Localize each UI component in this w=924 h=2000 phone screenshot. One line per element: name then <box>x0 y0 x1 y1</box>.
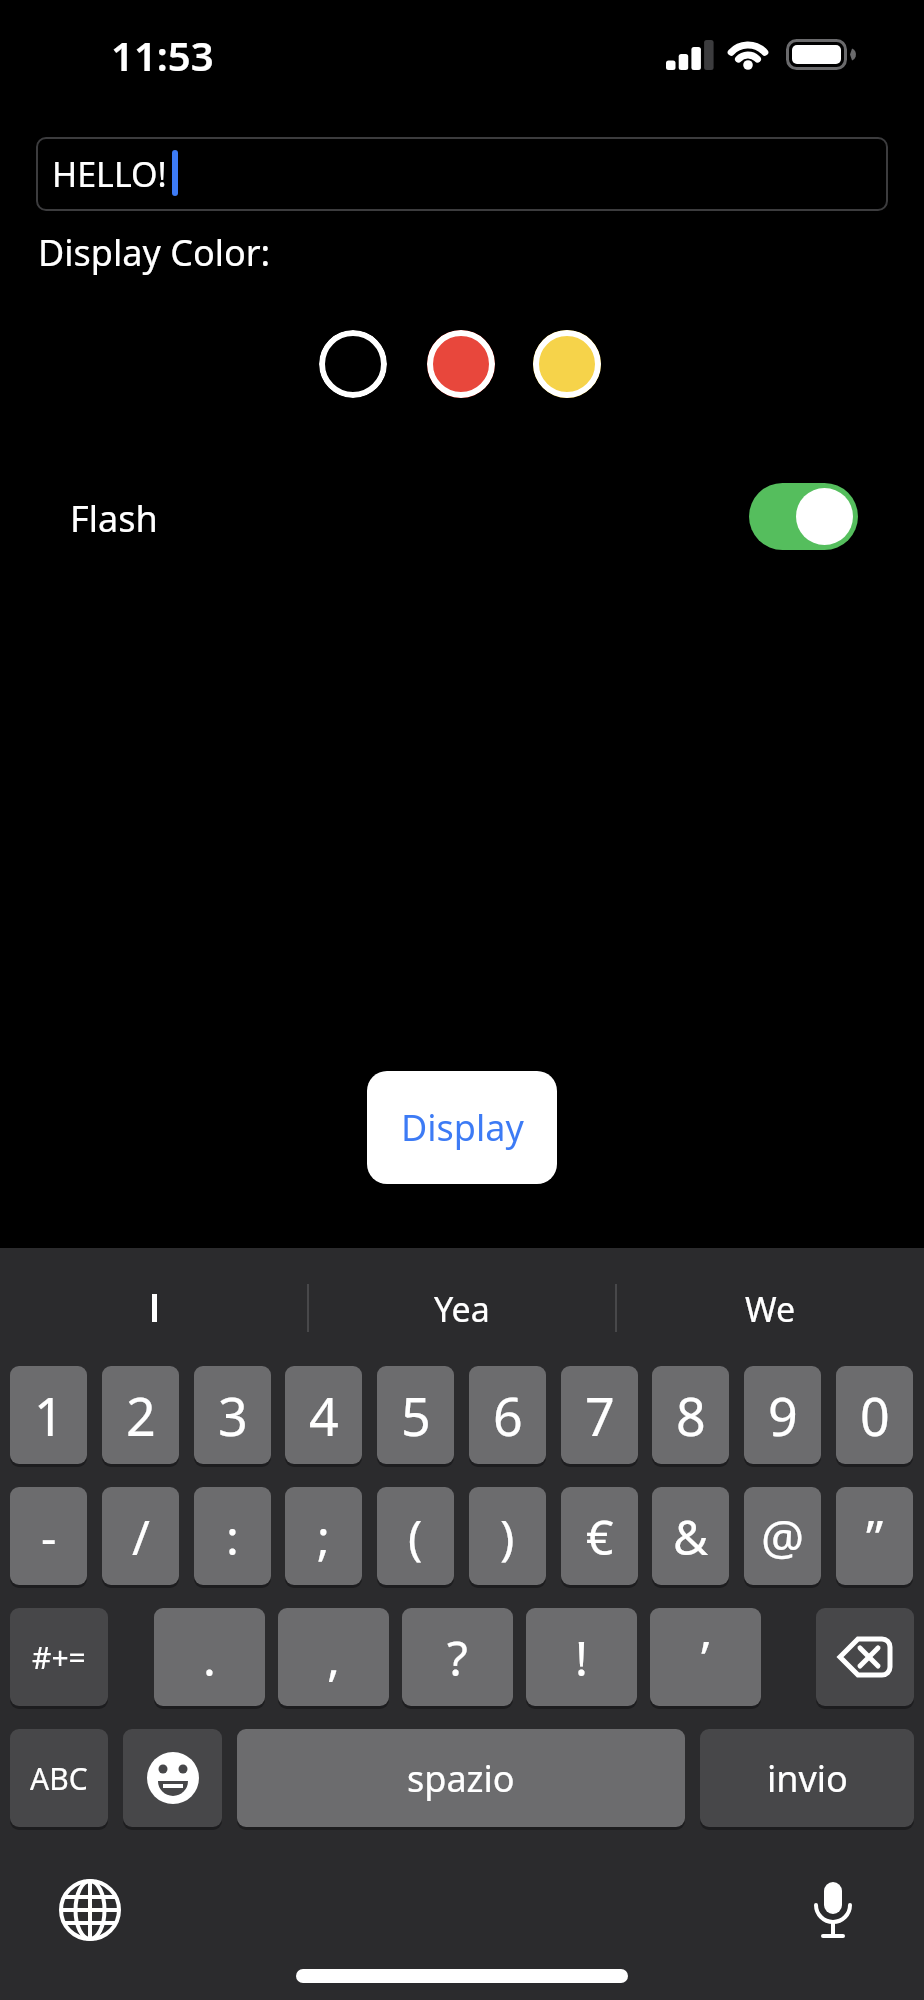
staticText: 2 <box>126 1380 156 1451</box>
button[interactable]: ( <box>377 1487 454 1585</box>
button[interactable]: / <box>102 1487 179 1585</box>
staticText: Yea <box>434 1286 490 1332</box>
staticText: ? <box>447 1625 468 1690</box>
staticText: @ <box>761 1504 805 1569</box>
staticText: 9 <box>768 1380 798 1451</box>
staticText: ) <box>500 1504 515 1569</box>
button[interactable]: HELLO! <box>36 137 888 211</box>
button[interactable]: 4 <box>285 1366 362 1464</box>
staticText: Display Color: <box>38 228 271 277</box>
button[interactable] <box>60 1880 120 1940</box>
staticText: 6 <box>493 1380 523 1451</box>
staticText: Flash <box>70 494 158 543</box>
staticText: We <box>745 1286 796 1332</box>
button[interactable]: 5 <box>377 1366 454 1464</box>
button[interactable]: 9 <box>744 1366 821 1464</box>
button[interactable]: 7 <box>561 1366 638 1464</box>
button[interactable]: 8 <box>652 1366 729 1464</box>
staticText: / <box>132 1504 150 1569</box>
button[interactable]: ? <box>402 1608 513 1706</box>
staticText: invio <box>767 1754 848 1803</box>
button[interactable]: ABC <box>10 1729 108 1827</box>
button[interactable]: #+= <box>10 1608 108 1706</box>
staticText: 4 <box>309 1380 339 1451</box>
staticText: 11:53 <box>111 28 214 80</box>
button[interactable]: invio <box>700 1729 914 1827</box>
button[interactable] <box>427 330 495 398</box>
staticText: HELLO! <box>52 151 167 197</box>
staticText: 7 <box>585 1380 615 1451</box>
button[interactable] <box>533 330 601 398</box>
button[interactable]: ” <box>836 1487 913 1585</box>
staticText: ” <box>866 1504 884 1569</box>
staticText: ABC <box>30 1758 88 1799</box>
button[interactable]: . <box>154 1608 265 1706</box>
staticText: 0 <box>860 1380 890 1451</box>
button[interactable]: 2 <box>102 1366 179 1464</box>
button[interactable] <box>319 330 387 398</box>
button[interactable]: Display <box>367 1071 557 1184</box>
staticText: ; <box>317 1504 330 1569</box>
button[interactable] <box>749 483 858 550</box>
button[interactable]: ) <box>469 1487 546 1585</box>
staticText: 3 <box>218 1380 248 1451</box>
staticText: 1 <box>34 1380 64 1451</box>
staticText: 5 <box>401 1380 431 1451</box>
staticText: & <box>673 1504 709 1569</box>
button[interactable]: & <box>652 1487 729 1585</box>
staticText: #+= <box>32 1637 86 1678</box>
staticText: Display <box>401 1103 524 1152</box>
button[interactable]: 0 <box>836 1366 913 1464</box>
staticText: - <box>41 1504 57 1569</box>
button[interactable] <box>805 1880 861 1944</box>
staticText: , <box>327 1625 340 1690</box>
staticText: ! <box>575 1625 588 1690</box>
button[interactable] <box>123 1729 222 1827</box>
button[interactable]: - <box>10 1487 87 1585</box>
staticText: 8 <box>676 1380 706 1451</box>
staticText: ’ <box>701 1625 710 1690</box>
button[interactable]: spazio <box>237 1729 685 1827</box>
button[interactable]: @ <box>744 1487 821 1585</box>
button[interactable]: 3 <box>194 1366 271 1464</box>
staticText: ( <box>408 1504 423 1569</box>
staticText: : <box>226 1504 239 1569</box>
button[interactable]: ! <box>526 1608 637 1706</box>
button[interactable] <box>816 1608 914 1706</box>
staticText: . <box>203 1625 216 1690</box>
button[interactable]: , <box>278 1608 389 1706</box>
button[interactable]: : <box>194 1487 271 1585</box>
button[interactable]: 1 <box>10 1366 87 1464</box>
button[interactable]: 6 <box>469 1366 546 1464</box>
button[interactable]: € <box>561 1487 638 1585</box>
staticText: € <box>586 1504 614 1569</box>
button[interactable]: ; <box>285 1487 362 1585</box>
staticText: spazio <box>407 1754 515 1803</box>
button[interactable]: ’ <box>650 1608 761 1706</box>
